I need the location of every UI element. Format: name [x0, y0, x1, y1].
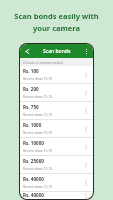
button[interactable]: Rs. 1000	[20, 120, 93, 138]
button[interactable]: Row options	[82, 179, 90, 187]
staticText: Recent draw 15.10	[23, 76, 53, 81]
button[interactable]: Back	[22, 47, 31, 56]
staticText: Rs. 10000	[23, 140, 44, 146]
button[interactable]: Rs. 100	[20, 66, 93, 84]
button[interactable]: Row options	[82, 89, 90, 97]
button[interactable]: Row options	[82, 161, 90, 169]
staticText: Recent draw 15.10	[23, 148, 53, 153]
staticText: Recent draw 15.10	[23, 112, 53, 117]
button[interactable]: Row options	[82, 71, 90, 79]
button[interactable]: Rs. 10000	[20, 138, 93, 156]
button[interactable]: Row options	[82, 125, 90, 133]
staticText: Scan bonds easily with	[14, 11, 99, 21]
button[interactable]: Row options	[82, 107, 90, 115]
button[interactable]: Rs. 200	[20, 84, 93, 102]
button[interactable]: Rs. 40000	[20, 174, 93, 192]
staticText: Rs. 25000	[23, 158, 44, 164]
button[interactable]: Rs. 40000	[20, 192, 93, 199]
staticText: Recent draw 15.10	[23, 94, 53, 99]
staticText: Recent draw 15.10	[23, 184, 53, 189]
staticText: Recent draw 15.10	[23, 166, 53, 171]
button[interactable]: Row options	[82, 192, 90, 199]
staticText: Rs. 40000	[23, 176, 44, 182]
staticText: Scan bonds	[43, 48, 71, 55]
staticText: Choose a denomination	[23, 60, 64, 65]
staticText: Rs. 1000	[23, 122, 42, 128]
staticText: Rs. 750	[23, 104, 39, 110]
button[interactable]: More options	[82, 47, 91, 56]
staticText: Rs. 40000	[23, 192, 44, 198]
staticText: your camera	[33, 23, 80, 33]
staticText: Rs. 200	[23, 86, 39, 92]
button[interactable]: Rs. 25000	[20, 156, 93, 174]
button[interactable]: Rs. 750	[20, 102, 93, 120]
staticText: Rs. 100	[23, 68, 39, 74]
staticText: Recent draw 15.10	[23, 130, 53, 135]
button[interactable]: Row options	[82, 143, 90, 151]
